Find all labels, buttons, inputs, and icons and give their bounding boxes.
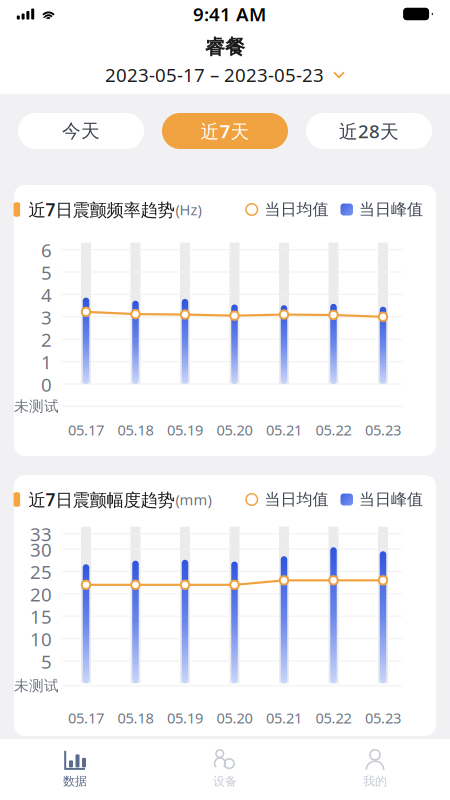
staticText: 今天 [62,119,100,142]
staticText: 05.17 [68,420,104,439]
staticText: 33 [30,522,52,546]
staticText: 05.21 [266,708,302,727]
staticText: 4 [41,282,52,307]
staticText: 6 [41,238,52,262]
staticText: 近28天 [339,119,399,143]
staticText: 05.17 [68,708,104,727]
staticText: 05.19 [167,708,203,727]
staticText: 30 [30,537,52,562]
staticText: 05.18 [117,708,153,727]
staticText: 当日峰值 [359,200,423,219]
staticText: 05.22 [315,420,351,439]
staticText: 我的 [363,774,387,789]
staticText: 睿餐 [205,35,245,59]
staticText: 0 [41,372,52,397]
staticText: 05.18 [117,420,153,439]
staticText: 3 [41,305,52,330]
staticText: 15 [30,604,52,629]
staticText: 05.19 [167,420,203,439]
staticText: 当日峰值 [359,490,423,509]
staticText: 2 [41,327,52,352]
staticText: 9:41 AM [193,2,266,26]
staticText: 20 [30,582,52,607]
staticText: 05.23 [365,420,401,439]
staticText: 近7天 [200,119,249,143]
staticText: 当日均值 [264,490,328,509]
button[interactable]: 近7天 [162,113,288,149]
staticText: 数据 [63,774,87,789]
staticText: 1 [41,350,52,374]
staticText: 未测试 [14,397,59,415]
staticText: 未测试 [14,677,59,695]
staticText: 近7日震颤频率趋势 [28,198,174,221]
button[interactable]: 近28天 [306,113,432,149]
staticText: 05.21 [266,420,302,439]
button[interactable]: 设备 [150,738,300,800]
button[interactable]: 我的 [300,738,450,800]
button[interactable]: 2023-05-17 – 2023-05-23 [105,62,345,87]
button[interactable]: 今天 [18,113,144,149]
staticText: 设备 [213,774,237,789]
staticText: 2023-05-17 – 2023-05-23 [105,62,324,87]
staticText: 05.20 [216,420,252,439]
staticText: 5 [41,260,52,285]
button[interactable]: 数据 [0,738,150,800]
staticText: 25 [30,559,52,584]
staticText: 05.22 [315,708,351,727]
staticText: 05.20 [216,708,252,727]
staticText: 5 [41,649,52,674]
staticText: (mm) [175,490,211,509]
staticText: 近7日震颤幅度趋势 [28,488,174,511]
staticText: (Hz) [175,200,201,219]
staticText: 10 [30,627,52,651]
staticText: 05.23 [365,708,401,727]
staticText: 当日均值 [264,200,328,219]
